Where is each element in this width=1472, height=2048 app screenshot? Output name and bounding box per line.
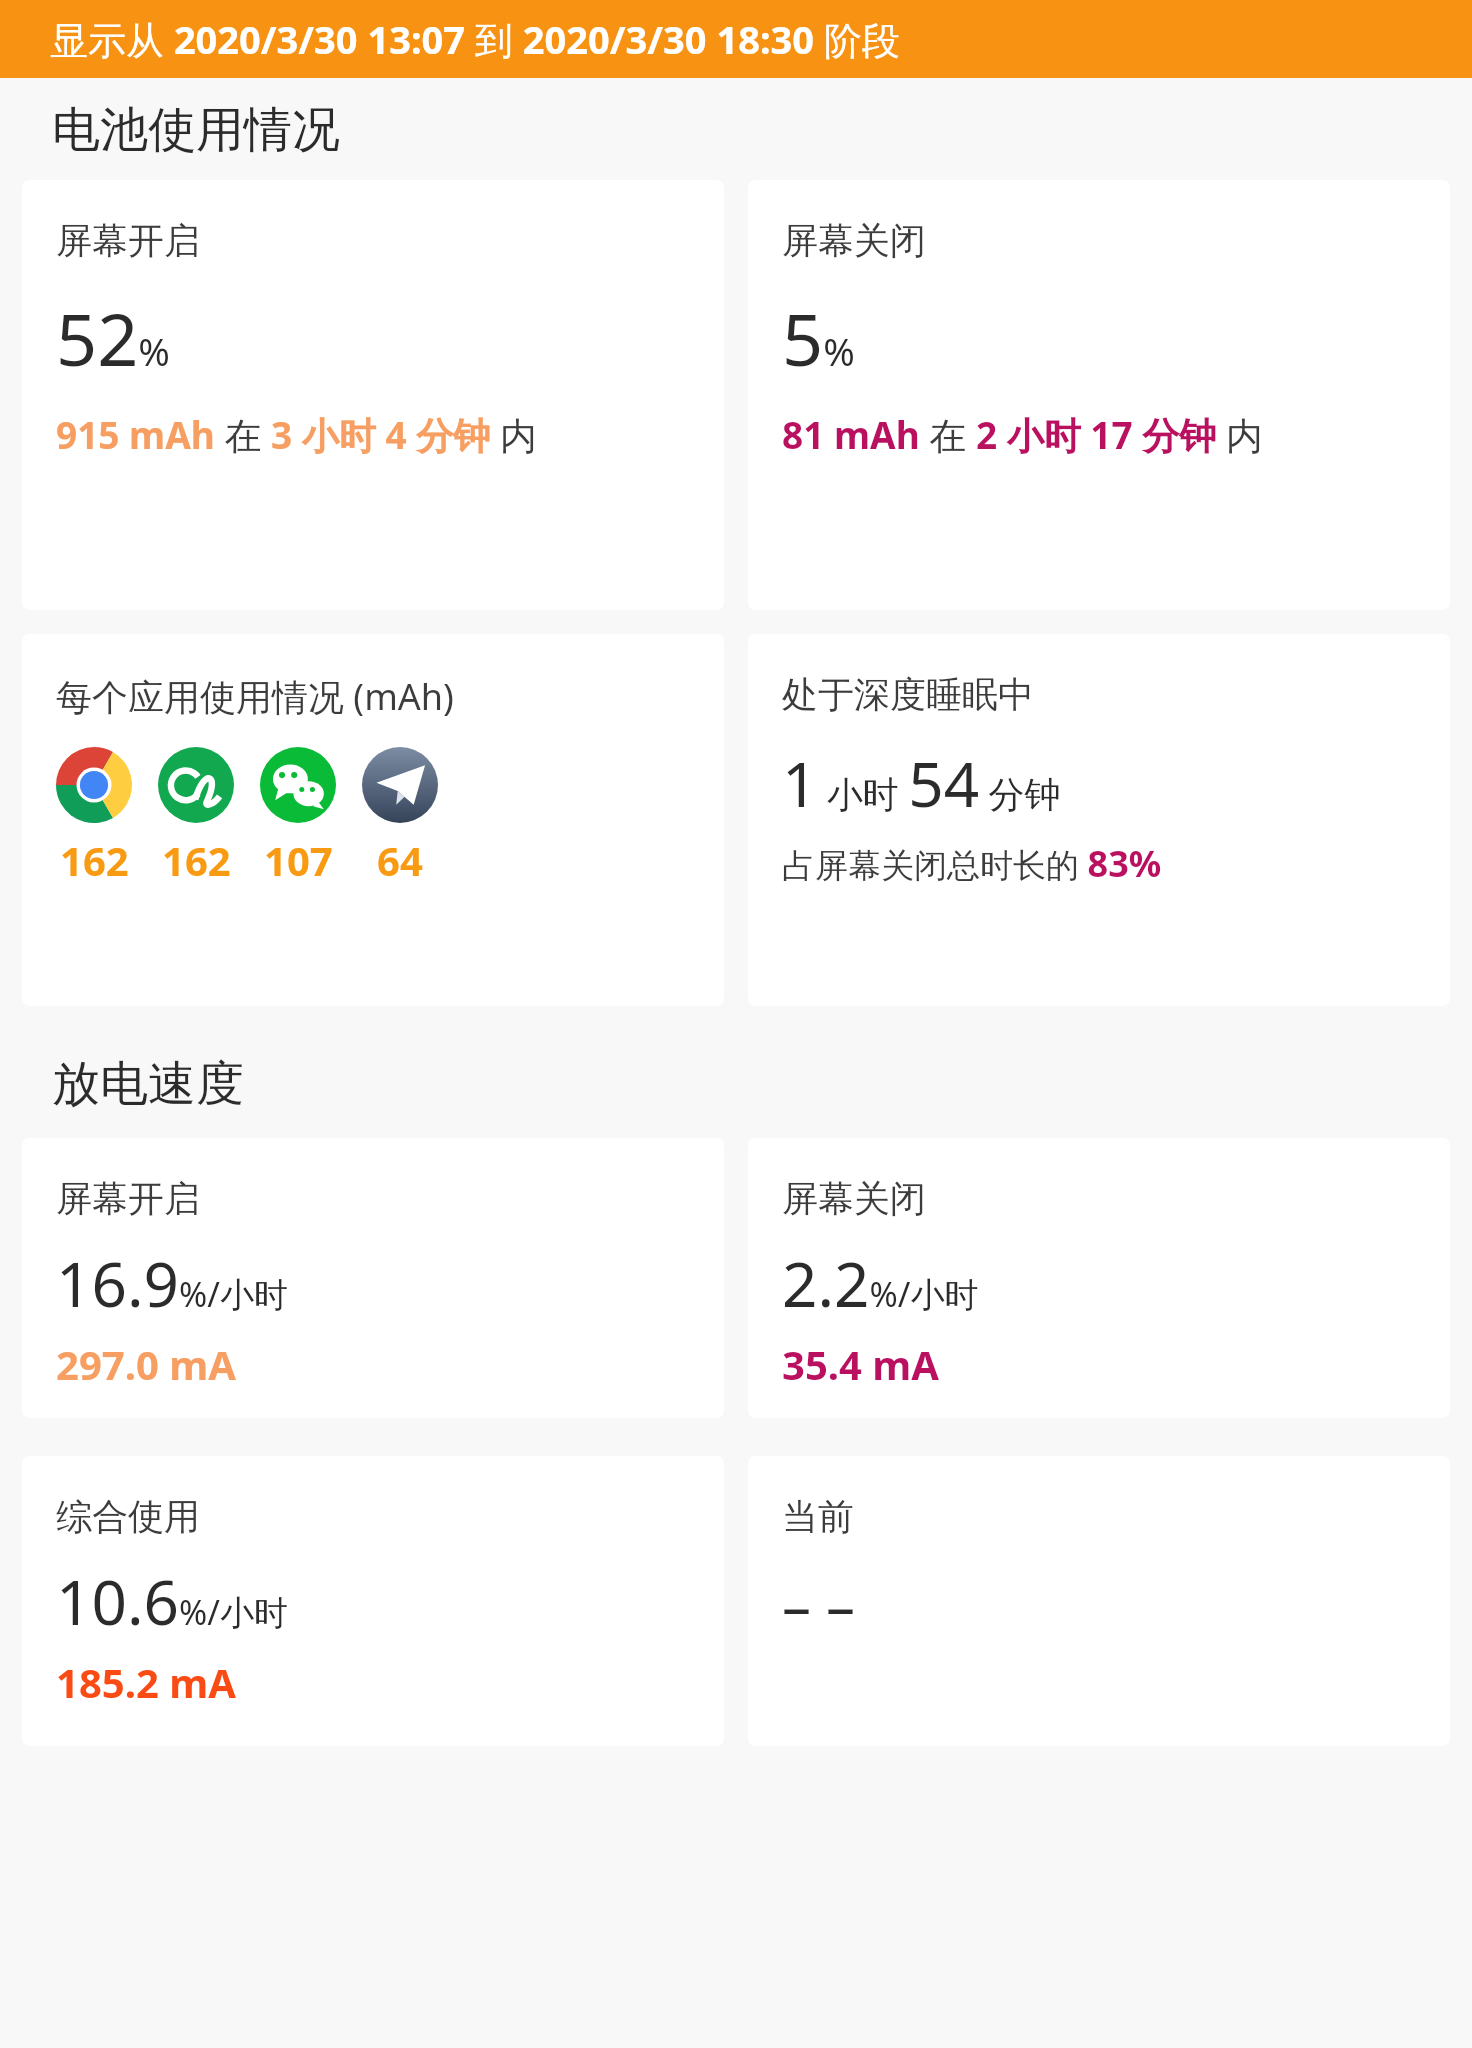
staticText: – – bbox=[782, 1565, 856, 1644]
staticText: 52% bbox=[56, 289, 170, 387]
staticText: 每个应用使用情况 (mAh) bbox=[56, 672, 454, 721]
staticText: 162 bbox=[162, 833, 231, 887]
staticText: 屏幕开启 bbox=[56, 1176, 200, 1221]
staticText: 占屏幕关闭总时长的 83% bbox=[782, 839, 1162, 888]
staticText: 1 小时 54 分钟 bbox=[782, 741, 1061, 825]
staticText: 综合使用 bbox=[56, 1494, 200, 1539]
staticText: 显示从 2020/3/30 13:07 到 2020/3/30 18:30 阶段 bbox=[50, 13, 900, 65]
staticText: 当前 bbox=[782, 1494, 854, 1539]
button[interactable]: 综合使用 bbox=[22, 1456, 724, 1746]
button[interactable]: 当前 bbox=[748, 1456, 1450, 1746]
staticText: 297.0 mA bbox=[56, 1337, 236, 1391]
button[interactable]: 屏幕开启 bbox=[22, 180, 724, 610]
staticText: 屏幕关闭 bbox=[782, 218, 926, 263]
staticText: 35.4 mA bbox=[782, 1337, 939, 1391]
staticText: 屏幕关闭 bbox=[782, 1176, 926, 1221]
staticText: 64 bbox=[377, 833, 423, 887]
staticText: 185.2 mA bbox=[56, 1655, 236, 1709]
staticText: 81 mAh 在 2 小时 17 分钟 内 bbox=[782, 409, 1263, 460]
staticText: 5% bbox=[782, 289, 855, 387]
staticText: 处于深度睡眠中 bbox=[782, 672, 1034, 717]
staticText: 107 bbox=[264, 833, 333, 887]
button[interactable]: 显示从 2020/3/30 13:07 到 2020/3/30 18:30 阶段 bbox=[0, 0, 1472, 78]
staticText: 915 mAh 在 3 小时 4 分钟 内 bbox=[56, 409, 537, 460]
other: WeChat bbox=[260, 747, 336, 823]
staticText: 电池使用情况 bbox=[52, 100, 340, 160]
button[interactable]: 屏幕关闭 bbox=[748, 1138, 1450, 1418]
button[interactable]: 处于深度睡眠中 bbox=[748, 634, 1450, 1006]
staticText: 放电速度 bbox=[52, 1054, 244, 1114]
staticText: 16.9%/小时 bbox=[56, 1241, 288, 1325]
staticText: 10.6%/小时 bbox=[56, 1559, 288, 1643]
button[interactable]: 屏幕开启 bbox=[22, 1138, 724, 1418]
button[interactable]: 每个应用使用情况 (mAh) bbox=[22, 634, 724, 1006]
staticText: 屏幕开启 bbox=[56, 218, 200, 263]
staticText: 2.2%/小时 bbox=[782, 1241, 979, 1325]
other: Telegram bbox=[362, 747, 438, 823]
staticText: 162 bbox=[60, 833, 129, 887]
button[interactable]: 屏幕关闭 bbox=[748, 180, 1450, 610]
other: Chrome bbox=[56, 747, 132, 823]
other: App bbox=[158, 747, 234, 823]
